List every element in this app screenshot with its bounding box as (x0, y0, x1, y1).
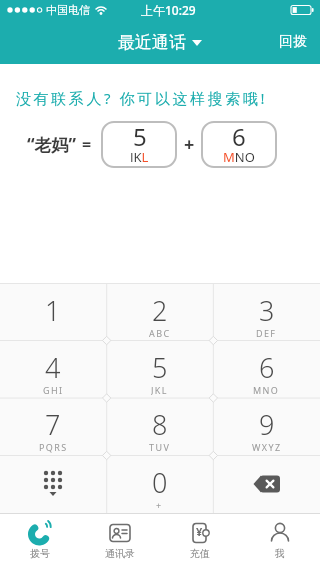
staticText: + (156, 499, 163, 511)
staticText: 4 (45, 349, 61, 386)
button[interactable]: 通讯录 (80, 513, 160, 568)
button[interactable]: 3 (213, 283, 320, 340)
staticText: ABC (149, 327, 171, 338)
button[interactable]: 我 (240, 513, 320, 568)
staticText: 9 (259, 406, 275, 443)
staticText: DEF (256, 327, 277, 338)
staticText: 5 (133, 120, 147, 153)
button[interactable]: 1 (0, 283, 106, 340)
button[interactable] (0, 455, 106, 513)
button[interactable]: 6 (213, 340, 320, 397)
staticText: 回拨 (279, 33, 307, 51)
button[interactable]: 4 (0, 340, 106, 397)
staticText: 6 (232, 120, 246, 153)
staticText: WXYZ (252, 441, 282, 453)
button[interactable]: 5 (106, 340, 213, 397)
button[interactable]: 2 (106, 283, 213, 340)
staticText: 充值 (190, 547, 210, 560)
button[interactable]: 8 (106, 397, 213, 455)
staticText: 2 (152, 292, 168, 329)
staticText: JKL (130, 148, 149, 162)
staticText: 8 (152, 406, 168, 443)
button[interactable]: 拨号 (0, 513, 80, 568)
button[interactable]: 7 (0, 397, 106, 455)
button[interactable]: 回拨 (266, 20, 320, 64)
staticText: = (82, 133, 92, 155)
staticText: 中国电信 (46, 3, 90, 17)
staticText: 3 (259, 292, 275, 329)
button[interactable]: 最近通话 (118, 32, 202, 53)
staticText: GHI (43, 384, 64, 395)
button[interactable]: ¥ (160, 513, 240, 568)
staticText: JKL (151, 384, 168, 395)
staticText: 1 (45, 292, 61, 329)
staticText: 拨号 (30, 547, 50, 560)
button[interactable]: 0 (106, 455, 213, 513)
button[interactable] (213, 455, 320, 513)
staticText: 0 (152, 464, 168, 501)
staticText: MNO (223, 148, 255, 162)
staticText: 没有联系人? 你可以这样搜索哦! (16, 88, 268, 108)
staticText: + (184, 132, 195, 157)
staticText: ¥ (196, 524, 203, 539)
staticText: 上午10:29 (141, 2, 196, 18)
button[interactable]: 9 (213, 397, 320, 455)
staticText: MNO (253, 384, 280, 395)
staticText: TUV (149, 441, 171, 453)
staticText: 6 (259, 349, 275, 386)
staticText: 通讯录 (105, 547, 135, 560)
staticText: “老妈” (27, 133, 77, 156)
staticText: 7 (45, 406, 61, 443)
staticText: PQRS (39, 441, 68, 453)
staticText: 最近通话 (118, 32, 186, 53)
staticText: 5 (152, 349, 168, 386)
staticText: 我 (275, 547, 285, 560)
